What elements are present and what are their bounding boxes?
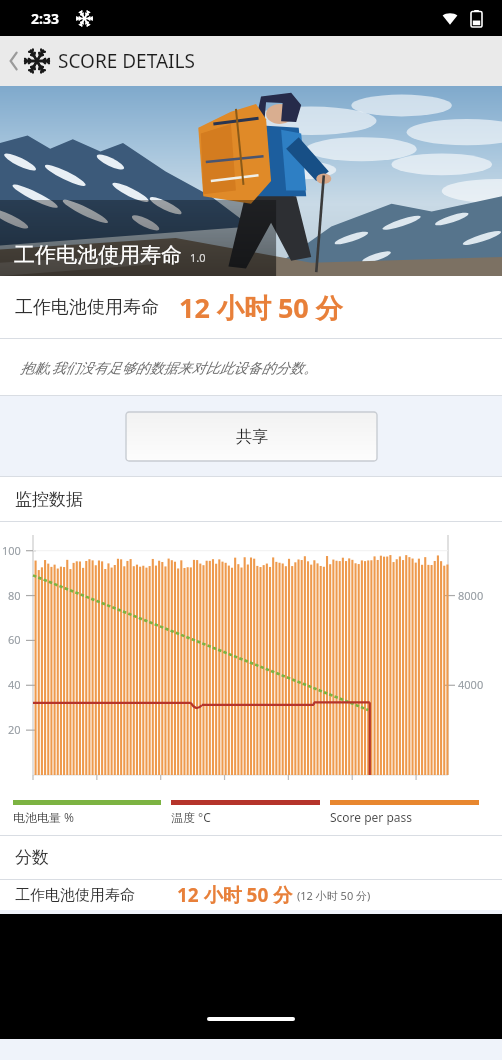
staticText: 12 小时 50 分 xyxy=(177,882,293,908)
staticText: 8000 xyxy=(458,588,484,603)
staticText: 工作电池使用寿命 xyxy=(14,242,182,268)
staticText: 20 xyxy=(8,722,21,737)
button[interactable]: 共享 xyxy=(126,412,377,461)
staticText: 工作电池使用寿命 xyxy=(15,296,159,319)
staticText: 监控数据 xyxy=(15,489,83,510)
staticText: 共享 xyxy=(236,427,268,447)
staticText: 40 xyxy=(8,677,21,692)
staticText: 100 xyxy=(2,543,21,558)
staticText: 80 xyxy=(8,588,21,603)
button[interactable]: Back xyxy=(0,44,24,78)
staticText: Score per pass xyxy=(330,809,413,825)
staticText: (12 小时 50 分) xyxy=(297,888,371,903)
staticText: 温度 °C xyxy=(171,809,211,825)
staticText: 4000 xyxy=(458,677,484,692)
staticText: 电池电量 % xyxy=(13,809,75,825)
staticText: 12 小时 50 分 xyxy=(179,289,343,326)
staticText: 1.0 xyxy=(190,250,206,265)
staticText: 抱歉,我们没有足够的数据来对比此设备的分数。 xyxy=(20,358,318,377)
staticText: SCORE DETAILS xyxy=(58,48,195,74)
staticText: 60 xyxy=(8,632,21,647)
staticText: 工作电池使用寿命 xyxy=(15,886,135,905)
staticText: 2:33 xyxy=(31,9,59,28)
staticText: 分数 xyxy=(15,847,49,868)
